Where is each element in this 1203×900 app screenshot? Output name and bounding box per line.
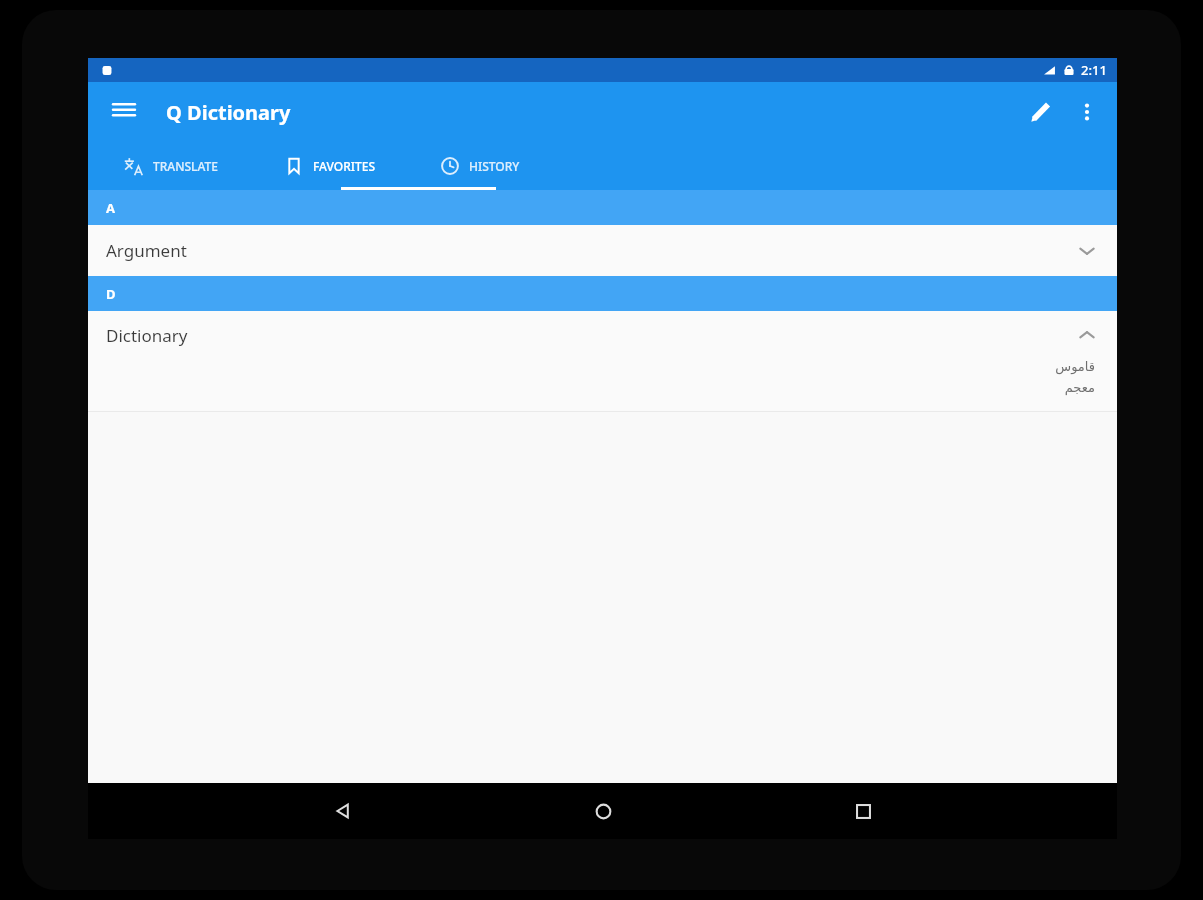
button[interactable]: A (88, 190, 1117, 225)
button[interactable]: Open navigation drawer (102, 90, 146, 134)
button[interactable]: Home (473, 783, 733, 839)
staticText: HISTORY (469, 158, 520, 174)
staticText: D (106, 285, 116, 303)
button[interactable]: HISTORY (408, 142, 553, 190)
staticText: FAVORITES (313, 158, 376, 174)
button[interactable]: TRANSLATE (88, 142, 253, 190)
button[interactable]: FAVORITES (253, 142, 408, 190)
button[interactable]: D (88, 276, 1117, 311)
button[interactable]: Argument (88, 225, 1117, 276)
button[interactable]: Back (213, 783, 473, 839)
staticText: A (106, 199, 115, 217)
button[interactable]: Edit (1017, 88, 1065, 136)
staticText: Argument (106, 239, 187, 262)
button[interactable]: More options (1065, 90, 1109, 134)
staticText: Q Dictionary (166, 99, 291, 126)
staticText: TRANSLATE (153, 158, 218, 174)
button[interactable]: Dictionary (88, 311, 1117, 411)
staticText: 2:11 (1081, 61, 1107, 79)
staticText: معجم (1064, 380, 1095, 395)
staticText: قاموس (1055, 359, 1095, 374)
button[interactable]: Recent apps (733, 783, 993, 839)
staticText: Dictionary (106, 324, 188, 347)
